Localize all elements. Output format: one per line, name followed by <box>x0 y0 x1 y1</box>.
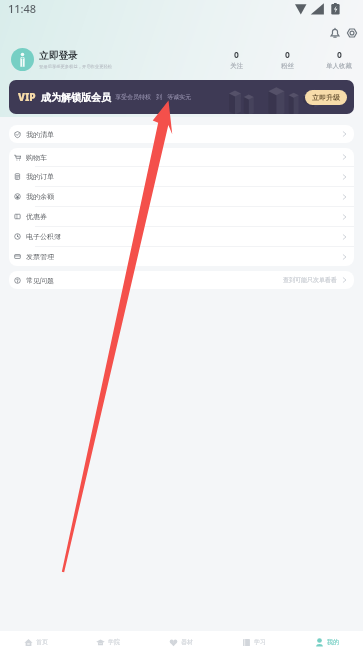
button[interactable]: 学习 <box>217 631 290 653</box>
button[interactable]: 我的余额 <box>9 187 354 206</box>
staticText: 成为解锁版会员 <box>41 91 111 104</box>
staticText: 首页 <box>36 638 48 646</box>
staticText: 立即登录 <box>39 50 78 62</box>
button[interactable]: Notifications <box>328 26 342 40</box>
staticText: 学习 <box>254 638 266 646</box>
button[interactable]: 立即登录 <box>11 48 113 71</box>
button[interactable]: 发票管理 <box>9 247 354 266</box>
staticText: 11:48 <box>8 1 37 16</box>
staticText: 我的余额 <box>26 192 54 201</box>
staticText: 登录后享受更多权益，开启作业更轻松 <box>39 64 113 69</box>
button[interactable]: Settings <box>345 26 359 40</box>
staticText: 发票管理 <box>26 252 54 261</box>
button[interactable]: 学院 <box>72 631 144 653</box>
button[interactable]: 器材 <box>144 631 217 653</box>
button[interactable]: 立即升级 <box>305 90 347 105</box>
button[interactable]: 我的清单 <box>9 125 354 143</box>
staticText: 关注 <box>230 62 243 70</box>
staticText: 常见问题 <box>26 276 54 285</box>
staticText: 享受会员特权 <box>115 93 151 101</box>
staticText: 0 <box>337 49 342 61</box>
staticText: 优惠券 <box>26 212 47 221</box>
button[interactable]: 0 <box>230 49 243 70</box>
button[interactable]: 优惠券 <box>9 207 354 226</box>
button[interactable]: 首页 <box>0 631 72 653</box>
staticText: 粉丝 <box>281 62 294 70</box>
staticText: 我的 <box>327 638 339 646</box>
staticText: 到 <box>156 93 162 101</box>
staticText: 0 <box>285 49 290 61</box>
staticText: 立即升级 <box>312 93 340 102</box>
staticText: 学院 <box>108 638 120 646</box>
staticText: 器材 <box>181 638 193 646</box>
staticText: 购物车 <box>26 153 47 162</box>
button[interactable]: 常见问题 <box>9 271 354 289</box>
staticText: VIP <box>18 90 36 104</box>
staticText: 查到可能只次单看看 <box>283 276 337 284</box>
staticText: 单人收藏 <box>326 62 352 70</box>
staticText: 电子公积簿 <box>26 232 61 241</box>
staticText: 0 <box>234 49 239 61</box>
button[interactable]: VIP <box>9 80 354 114</box>
button[interactable]: 0 <box>326 49 352 70</box>
button[interactable]: 我的订单 <box>9 167 354 186</box>
staticText: 我的订单 <box>26 172 54 181</box>
button[interactable]: 0 <box>281 49 294 70</box>
button[interactable]: 购物车 <box>9 148 354 166</box>
button[interactable]: 电子公积簿 <box>9 227 354 246</box>
staticText: 我的清单 <box>26 130 54 139</box>
staticText: 等诚实元 <box>167 93 191 101</box>
button[interactable]: 我的 <box>290 631 363 653</box>
